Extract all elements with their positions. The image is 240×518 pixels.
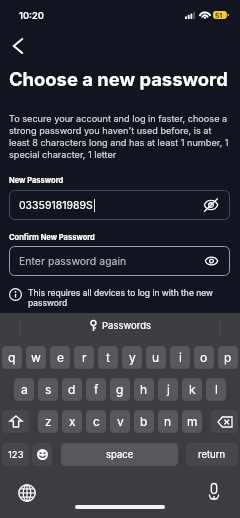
staticText: u: [152, 350, 160, 365]
button[interactable]: p: [218, 346, 238, 369]
staticText: 51: [215, 12, 223, 20]
staticText: b: [140, 414, 148, 429]
button[interactable]: 03359181989S: [9, 190, 230, 220]
button[interactable]: m: [182, 410, 202, 433]
button[interactable]: j: [158, 378, 178, 401]
button[interactable]: a: [14, 378, 34, 401]
button[interactable]: z: [38, 410, 58, 433]
staticText: space: [106, 449, 134, 460]
staticText: e: [57, 350, 64, 365]
staticText: 10:20: [19, 10, 44, 21]
button[interactable]: Dictate: [202, 480, 226, 504]
staticText: New Password: [9, 176, 64, 185]
button[interactable]: n: [158, 410, 178, 433]
button[interactable]: o: [194, 346, 214, 369]
button[interactable]: Show password: [201, 251, 221, 271]
staticText: k: [189, 382, 196, 397]
button[interactable]: Enter password again: [9, 246, 230, 276]
button[interactable]: Numbers: [2, 443, 29, 466]
staticText: t: [106, 350, 110, 365]
staticText: o: [200, 350, 208, 365]
staticText: Enter password again: [19, 255, 127, 268]
button[interactable]: r: [74, 346, 94, 369]
staticText: 123: [8, 449, 24, 460]
button[interactable]: return: [186, 443, 238, 466]
button[interactable]: y: [122, 346, 142, 369]
staticText: v: [117, 414, 124, 429]
staticText: i: [179, 350, 182, 365]
button[interactable]: i: [170, 346, 190, 369]
staticText: h: [140, 382, 148, 397]
button[interactable]: c: [86, 410, 106, 433]
staticText: c: [93, 414, 100, 429]
button[interactable]: Back: [4, 32, 32, 60]
staticText: Confirm New Password: [9, 233, 95, 242]
staticText: f: [94, 382, 99, 397]
staticText: l: [215, 382, 218, 397]
staticText: n: [164, 414, 172, 429]
staticText: Passwords: [102, 320, 151, 331]
staticText: x: [69, 414, 76, 429]
button[interactable]: b: [134, 410, 154, 433]
button[interactable]: Hide password: [201, 195, 221, 215]
staticText: s: [45, 382, 52, 397]
staticText: q: [8, 350, 16, 365]
button[interactable]: v: [110, 410, 130, 433]
staticText: a: [21, 382, 28, 397]
button[interactable]: h: [134, 378, 154, 401]
button[interactable]: d: [62, 378, 82, 401]
button[interactable]: w: [26, 346, 46, 369]
button[interactable]: Change keyboard: [14, 480, 39, 505]
button[interactable]: t: [98, 346, 118, 369]
button[interactable]: Emoji: [32, 443, 52, 466]
staticText: g: [116, 382, 124, 397]
staticText: 03359181989S: [19, 199, 93, 212]
staticText: z: [45, 414, 52, 429]
button[interactable]: f: [86, 378, 106, 401]
staticText: This requires all devices to log in with…: [28, 288, 230, 308]
staticText: p: [224, 350, 232, 365]
staticText: d: [68, 382, 76, 397]
button[interactable]: u: [146, 346, 166, 369]
button[interactable]: k: [182, 378, 202, 401]
staticText: w: [31, 350, 41, 365]
button[interactable]: l: [206, 378, 226, 401]
button[interactable]: g: [110, 378, 130, 401]
staticText: return: [198, 449, 226, 460]
staticText: To secure your account and log in faster…: [9, 113, 230, 160]
staticText: y: [129, 350, 136, 365]
button[interactable]: x: [62, 410, 82, 433]
button[interactable]: q: [2, 346, 22, 369]
button[interactable]: e: [50, 346, 70, 369]
staticText: m: [187, 414, 198, 429]
button[interactable]: s: [38, 378, 58, 401]
staticText: r: [82, 350, 87, 365]
button[interactable]: space: [61, 443, 178, 466]
button[interactable]: Shift: [2, 410, 29, 433]
button[interactable]: Backspace: [211, 410, 238, 433]
staticText: Choose a new password: [9, 68, 228, 90]
staticText: j: [167, 382, 170, 397]
